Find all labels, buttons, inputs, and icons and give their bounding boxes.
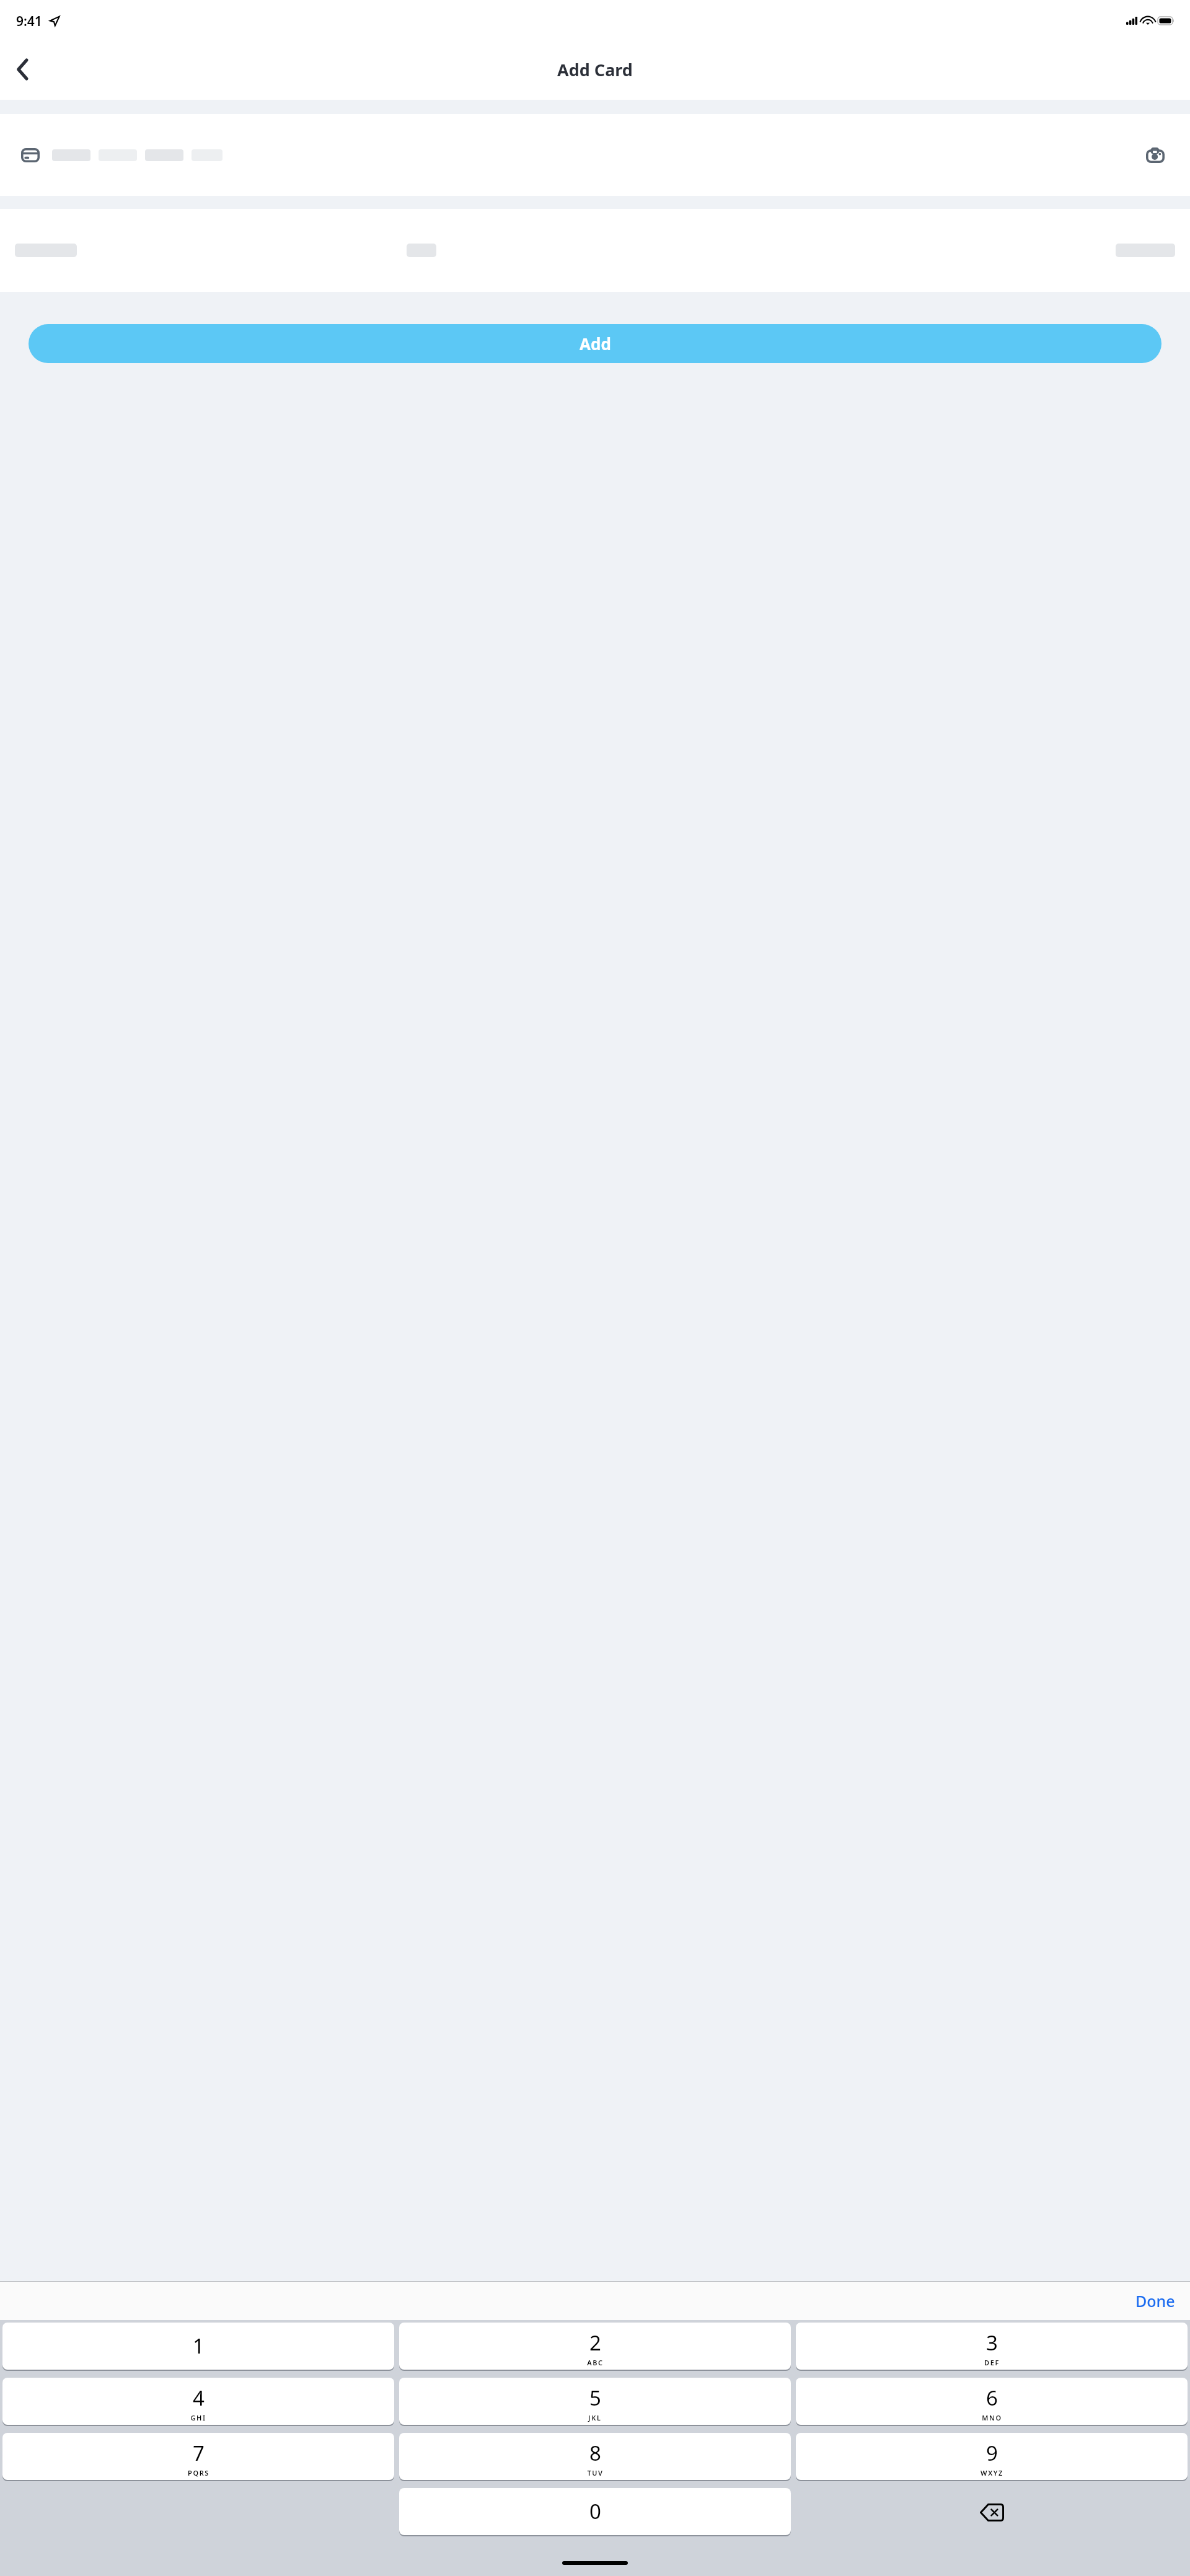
- button[interactable]: Back: [5, 52, 40, 87]
- staticText: 1: [193, 2332, 205, 2360]
- button[interactable]: 8: [399, 2433, 791, 2480]
- staticText: DEF: [984, 2358, 1000, 2367]
- staticText: Add: [580, 333, 611, 354]
- button[interactable]: 2: [399, 2323, 791, 2370]
- staticText: ABC: [587, 2358, 604, 2367]
- button[interactable]: [7, 209, 399, 292]
- staticText: Add Card: [557, 58, 633, 81]
- staticText: 8: [589, 2439, 601, 2467]
- staticText: TUV: [587, 2468, 604, 2477]
- staticText: 4: [193, 2384, 205, 2412]
- staticText: 3: [986, 2329, 998, 2357]
- button[interactable]: 6: [796, 2378, 1188, 2425]
- button[interactable]: Add: [29, 324, 1161, 363]
- staticText: 9:41: [16, 12, 42, 30]
- button[interactable]: 5: [399, 2378, 791, 2425]
- staticText: MNO: [982, 2413, 1002, 2422]
- button[interactable]: 4: [2, 2378, 394, 2425]
- button[interactable]: Scan card with camera: [1142, 141, 1169, 169]
- staticText: 6: [986, 2384, 998, 2412]
- staticText: 9: [986, 2439, 998, 2467]
- staticText: Done: [1135, 2290, 1175, 2311]
- button[interactable]: Done: [1121, 2284, 1190, 2318]
- staticText: PQRS: [188, 2468, 209, 2477]
- button[interactable]: 7: [2, 2433, 394, 2480]
- button[interactable]: 3: [796, 2323, 1188, 2370]
- button[interactable]: 0: [399, 2488, 791, 2535]
- button[interactable]: Scan card with camera: [0, 114, 1190, 196]
- staticText: 5: [589, 2384, 601, 2412]
- staticText: GHI: [190, 2413, 206, 2422]
- staticText: 0: [589, 2497, 601, 2525]
- button[interactable]: 1: [2, 2323, 394, 2370]
- staticText: WXYZ: [981, 2468, 1003, 2477]
- button[interactable]: Delete: [793, 2488, 1190, 2536]
- button[interactable]: 9: [796, 2433, 1188, 2480]
- staticText: JKL: [588, 2413, 602, 2422]
- staticText: 2: [589, 2329, 601, 2357]
- button[interactable]: [791, 209, 1183, 292]
- staticText: 7: [193, 2439, 205, 2467]
